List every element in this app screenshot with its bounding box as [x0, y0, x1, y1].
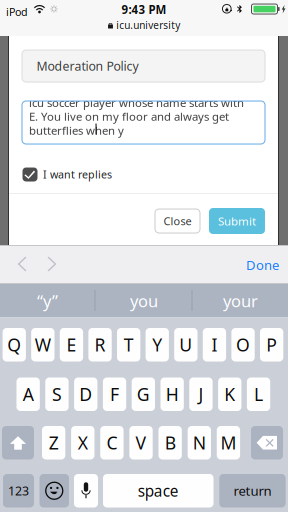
staticText: Y — [152, 333, 162, 357]
staticText: butterflies when y — [29, 123, 124, 138]
staticText: Q — [7, 333, 21, 357]
staticText: 123 — [8, 482, 29, 499]
staticText: icu.university — [116, 18, 180, 32]
button[interactable]: P — [260, 328, 283, 361]
button[interactable]: Emoji keyboard — [39, 474, 69, 507]
button[interactable]: Z — [42, 426, 65, 459]
staticText: W — [35, 333, 51, 357]
staticText: D — [79, 382, 92, 406]
button[interactable]: R — [88, 328, 112, 361]
button[interactable]: you — [96, 284, 191, 317]
button[interactable]: J — [189, 377, 213, 411]
button[interactable]: Y — [146, 328, 169, 361]
button[interactable]: G — [132, 377, 155, 411]
staticText: iPod — [6, 4, 28, 19]
staticText: U — [179, 333, 192, 357]
staticText: Done — [246, 256, 279, 274]
button[interactable]: space — [103, 474, 213, 507]
button[interactable]: N — [188, 426, 211, 459]
button[interactable]: A — [16, 377, 40, 411]
staticText: I want replies — [43, 167, 112, 181]
button[interactable]: M — [217, 426, 240, 459]
button[interactable]: D — [74, 377, 97, 411]
button[interactable]: “y” — [0, 284, 95, 317]
button[interactable]: Dictate — [74, 474, 98, 507]
button[interactable]: your — [193, 284, 288, 317]
staticText: N — [193, 431, 206, 455]
staticText: P — [266, 333, 277, 357]
button[interactable]: C — [100, 426, 124, 459]
button[interactable]: T — [117, 328, 140, 361]
button[interactable]: B — [158, 426, 182, 459]
staticText: space — [138, 480, 179, 501]
staticText: return — [233, 482, 271, 500]
staticText: Z — [49, 431, 59, 455]
staticText: Moderation Policy — [36, 58, 138, 74]
staticText: X — [78, 431, 88, 455]
button[interactable]: Close — [155, 209, 200, 233]
button[interactable]: V — [129, 426, 153, 459]
staticText: Close — [163, 214, 191, 228]
button[interactable]: K — [218, 377, 241, 411]
staticText: you — [130, 289, 158, 312]
button[interactable]: Shift — [2, 426, 34, 459]
staticText: icu soccer player whose name starts with — [29, 95, 244, 110]
staticText: J — [198, 382, 203, 406]
staticText: H — [166, 382, 179, 406]
staticText: your — [223, 289, 258, 312]
button[interactable]: Q — [3, 328, 26, 361]
staticText: A — [23, 382, 34, 406]
staticText: F — [110, 382, 119, 406]
staticText: G — [137, 382, 150, 406]
button[interactable]: Done — [235, 253, 279, 277]
button[interactable]: H — [160, 377, 184, 411]
staticText: L — [254, 382, 263, 406]
button[interactable]: L — [247, 377, 270, 411]
button[interactable]: Submit — [209, 208, 265, 234]
button[interactable]: Previous field — [11, 251, 33, 277]
staticText: B — [165, 431, 176, 455]
button[interactable]: Next field — [42, 251, 64, 277]
staticText: V — [135, 431, 146, 455]
button[interactable]: Delete — [251, 426, 283, 459]
staticText: O — [236, 333, 250, 357]
staticText: R — [95, 333, 106, 357]
button[interactable]: E — [60, 328, 83, 361]
button[interactable]: X — [71, 426, 94, 459]
button[interactable]: S — [45, 377, 69, 411]
staticText: E. You live on my floor and always get — [29, 109, 229, 124]
staticText: K — [224, 382, 235, 406]
button[interactable]: W — [31, 328, 54, 361]
staticText: C — [106, 431, 117, 455]
staticText: I — [211, 333, 217, 357]
button[interactable]: O — [231, 328, 255, 361]
button[interactable]: U — [174, 328, 197, 361]
staticText: E — [66, 333, 76, 357]
staticText: T — [124, 333, 134, 357]
staticText: Submit — [218, 213, 256, 229]
button[interactable]: 123 — [3, 474, 34, 507]
button[interactable]: I — [203, 328, 226, 361]
staticText: 9:43 PM — [121, 2, 166, 17]
staticText: M — [220, 431, 236, 455]
button[interactable]: return — [219, 474, 286, 507]
staticText: S — [52, 382, 62, 406]
staticText: “y” — [37, 289, 58, 312]
button[interactable]: F — [103, 377, 126, 411]
